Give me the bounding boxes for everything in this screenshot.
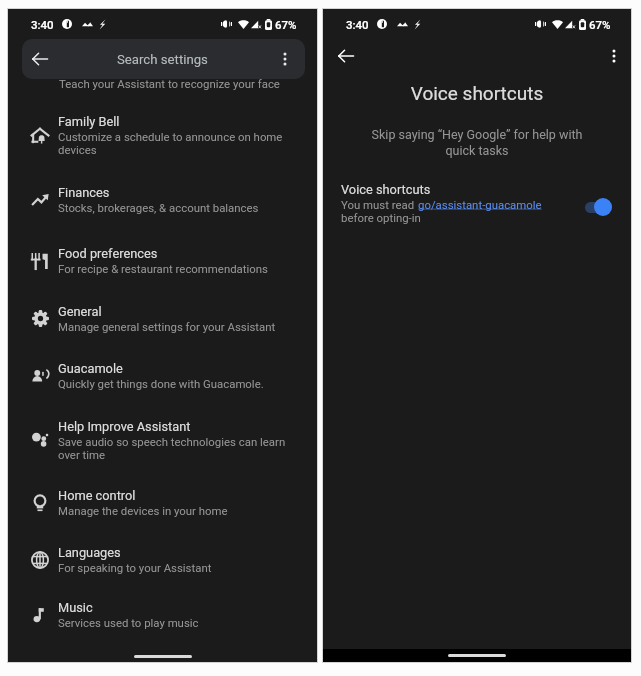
staticText: Help Improve Assistant (58, 419, 191, 434)
staticText: Family Bell (58, 114, 120, 129)
button[interactable]: Back (22, 39, 305, 79)
button[interactable]: More options (605, 47, 623, 65)
staticText: Customize a schedule to announce on home… (58, 130, 303, 157)
button[interactable]: General (8, 289, 317, 346)
staticText: before opting-in (341, 211, 421, 224)
staticText: Food preferences (58, 246, 158, 261)
staticText: Teach your Assistant to recognize your f… (59, 77, 280, 90)
button[interactable]: Food preferences (8, 229, 317, 289)
staticText: You must read (341, 198, 418, 211)
staticText: Manage general settings for your Assista… (58, 320, 276, 333)
button[interactable]: Back (337, 47, 355, 65)
staticText: 67% (589, 18, 611, 31)
button[interactable]: Home control (8, 475, 317, 531)
button[interactable]: Music (8, 588, 317, 643)
staticText: Search settings (117, 52, 208, 67)
button[interactable]: Voice shortcuts toggle (585, 198, 612, 216)
staticText: Guacamole (58, 361, 123, 376)
button[interactable]: More options (276, 50, 294, 68)
button[interactable]: Finances (8, 169, 317, 229)
button[interactable]: Languages (8, 531, 317, 588)
staticText: Home control (58, 488, 136, 503)
button[interactable]: Back (31, 50, 49, 68)
staticText: 3:40 (346, 18, 369, 31)
button[interactable]: Voice shortcuts (323, 176, 631, 230)
button[interactable]: Help Improve Assistant (8, 404, 317, 475)
staticText: Stocks, brokerages, & account balances (58, 201, 259, 214)
staticText: Services used to play music (58, 616, 199, 629)
staticText: Skip saying “Hey Google” for help with q… (347, 127, 607, 158)
staticText: General (58, 304, 102, 319)
staticText: Music (58, 600, 93, 615)
staticText: 3:40 (31, 18, 54, 31)
staticText: 67% (275, 18, 297, 31)
staticText: go/assistant-guacamole (418, 198, 542, 211)
staticText: Languages (58, 545, 121, 560)
staticText: For speaking to your Assistant (58, 561, 212, 574)
staticText: Quickly get things done with Guacamole. (58, 377, 264, 390)
staticText: Save audio so speech technologies can le… (58, 435, 303, 462)
staticText: Voice shortcuts (323, 82, 631, 104)
staticText: Manage the devices in your home (58, 504, 228, 517)
staticText: Voice shortcuts (341, 182, 431, 197)
staticText: For recipe & restaurant recommendations (58, 262, 268, 275)
button[interactable]: Family Bell (8, 100, 317, 169)
button[interactable]: Guacamole (8, 346, 317, 404)
staticText: Finances (58, 185, 110, 200)
